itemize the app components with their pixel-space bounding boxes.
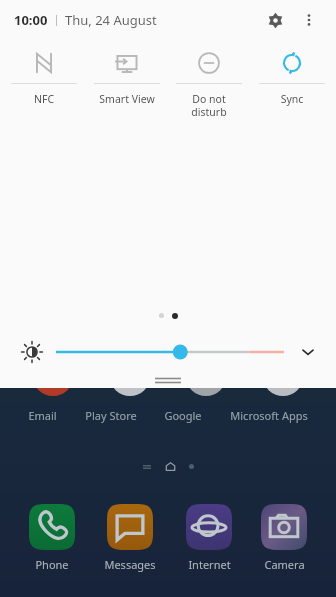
staticText: Google	[164, 408, 202, 423]
button[interactable]: Phone	[29, 504, 75, 572]
staticText: Email	[28, 408, 57, 423]
staticText: NFC	[6, 92, 82, 106]
staticText: Thu, 24 August	[65, 11, 157, 29]
staticText: Smart View	[89, 92, 165, 106]
staticText: 10:00	[14, 11, 48, 29]
button[interactable]: Settings	[260, 5, 290, 35]
button[interactable]: Expand brightness settings	[294, 338, 322, 366]
button[interactable]: Smart View	[89, 42, 165, 106]
staticText: Do not disturb	[171, 92, 247, 119]
button[interactable]: Brightness	[56, 340, 284, 364]
staticText: Play Store	[85, 408, 137, 423]
button[interactable]: More options	[294, 5, 324, 35]
button[interactable]: Messages	[104, 504, 156, 572]
button[interactable]: Do not disturb	[171, 42, 247, 119]
staticText: Sync	[254, 92, 330, 106]
button[interactable]: Camera	[261, 504, 307, 572]
button[interactable]: Sync	[254, 42, 330, 106]
staticText: Internet	[188, 557, 231, 572]
button[interactable]: NFC	[6, 42, 82, 106]
staticText: Microsoft Apps	[230, 408, 308, 423]
staticText: Messages	[104, 557, 156, 572]
button[interactable]: Internet	[186, 504, 232, 572]
staticText: Camera	[264, 557, 305, 572]
staticText: Phone	[35, 557, 69, 572]
